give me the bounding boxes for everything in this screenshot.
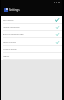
staticText: Block on facebook login	[3, 33, 24, 36]
staticText: Update notification	[3, 26, 20, 29]
staticText: Logout	[3, 55, 10, 58]
button[interactable]: Terms of Policy	[1, 38, 62, 46]
button[interactable]: Logout	[1, 53, 62, 60]
staticText: Terms of Policy	[3, 41, 17, 44]
staticText: Push option	[3, 19, 14, 22]
staticText: Settings	[9, 8, 20, 12]
button[interactable]: App icon	[4, 8, 8, 12]
button[interactable]: Push option	[1, 16, 62, 24]
button[interactable]: Update notification	[1, 24, 62, 31]
button[interactable]: Account setting	[1, 46, 62, 53]
staticText: Account setting	[3, 48, 17, 51]
button[interactable]: Block on facebook login	[1, 31, 62, 38]
